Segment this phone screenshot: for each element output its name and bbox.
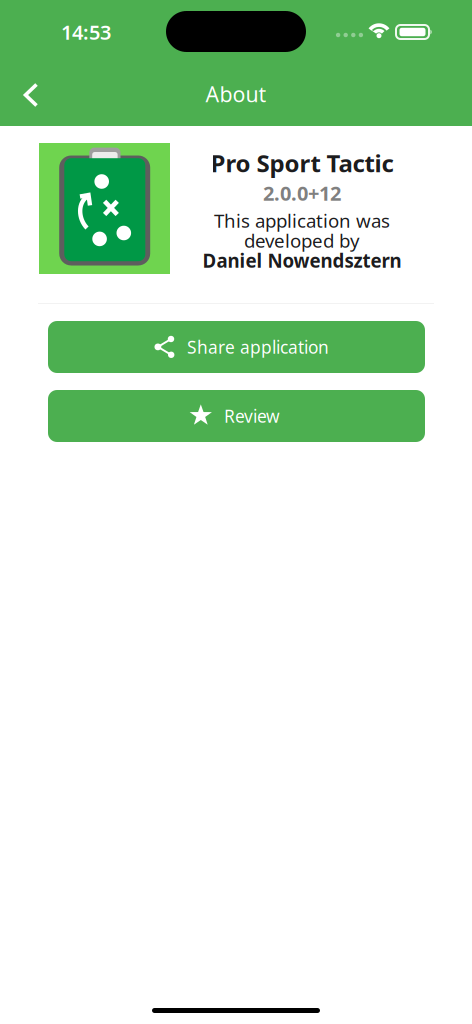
staticText: Review (224, 404, 280, 427)
staticText: 2.0.0+12 (263, 180, 341, 206)
staticText: Daniel Nowendsztern (202, 248, 401, 273)
staticText: developed by (244, 228, 360, 253)
staticText: This application was (214, 208, 390, 233)
staticText: Share application (187, 335, 329, 358)
button[interactable]: Back (3, 67, 59, 123)
button[interactable]: Share application (48, 321, 425, 373)
staticText: Pro Sport Tactic (210, 147, 393, 179)
button[interactable]: Review (48, 390, 425, 442)
staticText: About (205, 80, 266, 108)
staticText: 14:53 (61, 19, 111, 45)
